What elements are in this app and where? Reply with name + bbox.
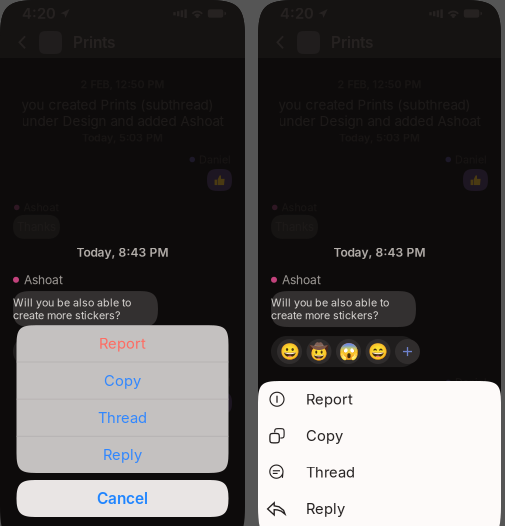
button[interactable]: More reactions bbox=[137, 339, 162, 364]
staticText: 😄 bbox=[368, 342, 388, 361]
button[interactable]: Report bbox=[258, 381, 501, 417]
staticText: Ashoat bbox=[23, 201, 58, 214]
staticText: Today, 5:03 PM bbox=[82, 131, 163, 144]
button[interactable]: Report bbox=[16, 325, 228, 362]
button[interactable]: React Screaming bbox=[336, 339, 361, 364]
staticText: Ashoat bbox=[24, 272, 63, 287]
staticText: Daniel bbox=[455, 376, 487, 389]
staticText: Will you be also able to create more sti… bbox=[271, 296, 389, 322]
staticText: 2 FEB, 12:50 PM bbox=[80, 78, 164, 91]
staticText: Report bbox=[306, 390, 353, 408]
staticText: Reply bbox=[306, 500, 345, 518]
staticText: Ashoat bbox=[282, 272, 321, 287]
button[interactable]: Reply bbox=[258, 490, 501, 526]
staticText: 2 FEB, 12:50 PM bbox=[337, 78, 421, 91]
staticText: Cancel bbox=[97, 489, 148, 508]
button[interactable]: Thread bbox=[16, 399, 228, 436]
staticText: Daniel bbox=[199, 376, 231, 389]
button[interactable]: Back bbox=[274, 32, 288, 52]
button[interactable]: More reactions bbox=[395, 339, 420, 364]
button[interactable]: React Screaming bbox=[78, 339, 103, 364]
button[interactable]: React Cowboy bbox=[306, 339, 331, 364]
staticText: 😀 bbox=[279, 342, 299, 361]
staticText: Today, 8:43 PM bbox=[76, 245, 168, 259]
button[interactable]: React Grinning bbox=[277, 339, 302, 364]
staticText: you created Prints (subthread) under Des… bbox=[278, 97, 480, 129]
button[interactable]: Copy bbox=[16, 362, 228, 399]
button[interactable]: Thread bbox=[258, 454, 501, 490]
staticText: Prints bbox=[73, 33, 115, 52]
staticText: Today, 5:03 PM bbox=[339, 131, 420, 144]
button[interactable]: React Smiling bbox=[365, 339, 390, 364]
button[interactable]: React Smiling bbox=[107, 339, 132, 364]
staticText: 😄 bbox=[110, 342, 130, 361]
staticText: Today, 8:43 PM bbox=[333, 245, 425, 259]
staticText: 4:20 bbox=[280, 5, 314, 22]
staticText: Report bbox=[99, 335, 146, 352]
button[interactable]: Reply bbox=[16, 436, 228, 473]
staticText: Copy bbox=[306, 427, 343, 445]
staticText: Reply bbox=[103, 446, 142, 464]
button[interactable]: Copy bbox=[258, 417, 501, 454]
button[interactable]: Cancel bbox=[16, 480, 228, 517]
button[interactable]: Back bbox=[16, 32, 30, 52]
staticText: Daniel bbox=[199, 153, 231, 166]
staticText: Thread bbox=[98, 409, 147, 426]
staticText: Ashoat bbox=[281, 201, 316, 214]
staticText: Thread bbox=[306, 463, 355, 481]
staticText: 😱 bbox=[338, 342, 358, 361]
staticText: Will you be also able to create more sti… bbox=[13, 296, 131, 322]
staticText: Copy bbox=[104, 372, 141, 389]
staticText: you created Prints (subthread) under Des… bbox=[21, 97, 223, 129]
staticText: 4:20 bbox=[22, 5, 56, 22]
staticText: 🤠 bbox=[309, 342, 329, 361]
staticText: Prints bbox=[331, 33, 373, 52]
staticText: Daniel bbox=[455, 153, 487, 166]
